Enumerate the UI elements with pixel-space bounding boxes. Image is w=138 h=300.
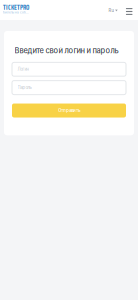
button[interactable]: Ru (106, 1, 120, 19)
staticText: Отправить (58, 108, 80, 113)
staticText: Введите свой логин и пароль (15, 46, 119, 55)
button[interactable]: Отправить (12, 103, 126, 117)
staticText: Логин (17, 67, 28, 72)
button[interactable]: Ticketpro home (0, 0, 30, 20)
staticText: Пароль (17, 85, 31, 90)
staticText: Ru (108, 8, 113, 13)
button[interactable]: Menu (120, 0, 138, 20)
staticText: билеты на события (3, 11, 30, 14)
staticText: TICKETPRO (3, 2, 29, 13)
